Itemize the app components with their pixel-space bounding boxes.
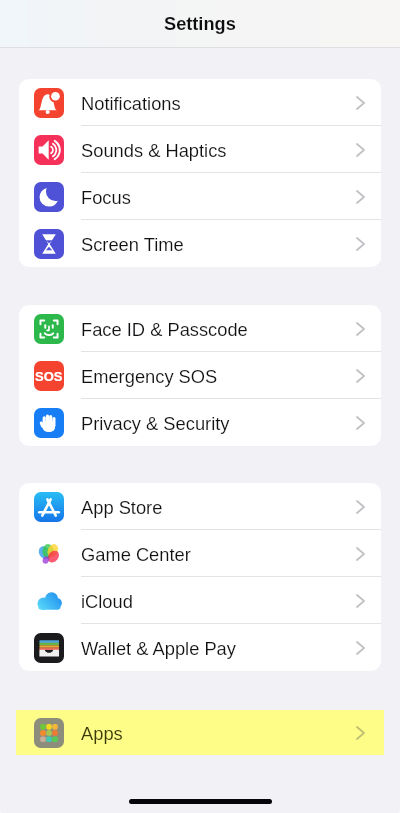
- staticText: Apps: [81, 723, 356, 743]
- staticText: Screen Time: [81, 234, 356, 254]
- button[interactable]: Apps: [16, 710, 384, 755]
- staticText: Settings: [164, 14, 236, 34]
- button[interactable]: Sounds & Haptics: [19, 126, 381, 173]
- button[interactable]: Focus: [19, 173, 381, 220]
- other: Home indicator: [129, 799, 272, 804]
- button[interactable]: iCloud: [19, 577, 381, 624]
- staticText: Face ID & Passcode: [81, 319, 356, 339]
- button[interactable]: Screen Time: [19, 220, 381, 267]
- staticText: Game Center: [81, 544, 356, 564]
- staticText: SOS: [35, 369, 63, 384]
- staticText: Notifications: [81, 93, 356, 113]
- staticText: Sounds & Haptics: [81, 140, 356, 160]
- button[interactable]: Notifications: [19, 79, 381, 126]
- staticText: Privacy & Security: [81, 413, 356, 433]
- button[interactable]: Game Center: [19, 530, 381, 577]
- staticText: App Store: [81, 497, 356, 517]
- button[interactable]: Face ID & Passcode: [19, 305, 381, 352]
- button[interactable]: Privacy & Security: [19, 399, 381, 446]
- staticText: iCloud: [81, 591, 356, 611]
- button[interactable]: SOS: [19, 352, 381, 399]
- staticText: Wallet & Apple Pay: [81, 638, 356, 658]
- staticText: Focus: [81, 187, 356, 207]
- staticText: Emergency SOS: [81, 366, 356, 386]
- button[interactable]: Wallet & Apple Pay: [19, 624, 381, 671]
- button[interactable]: App Store: [19, 483, 381, 530]
